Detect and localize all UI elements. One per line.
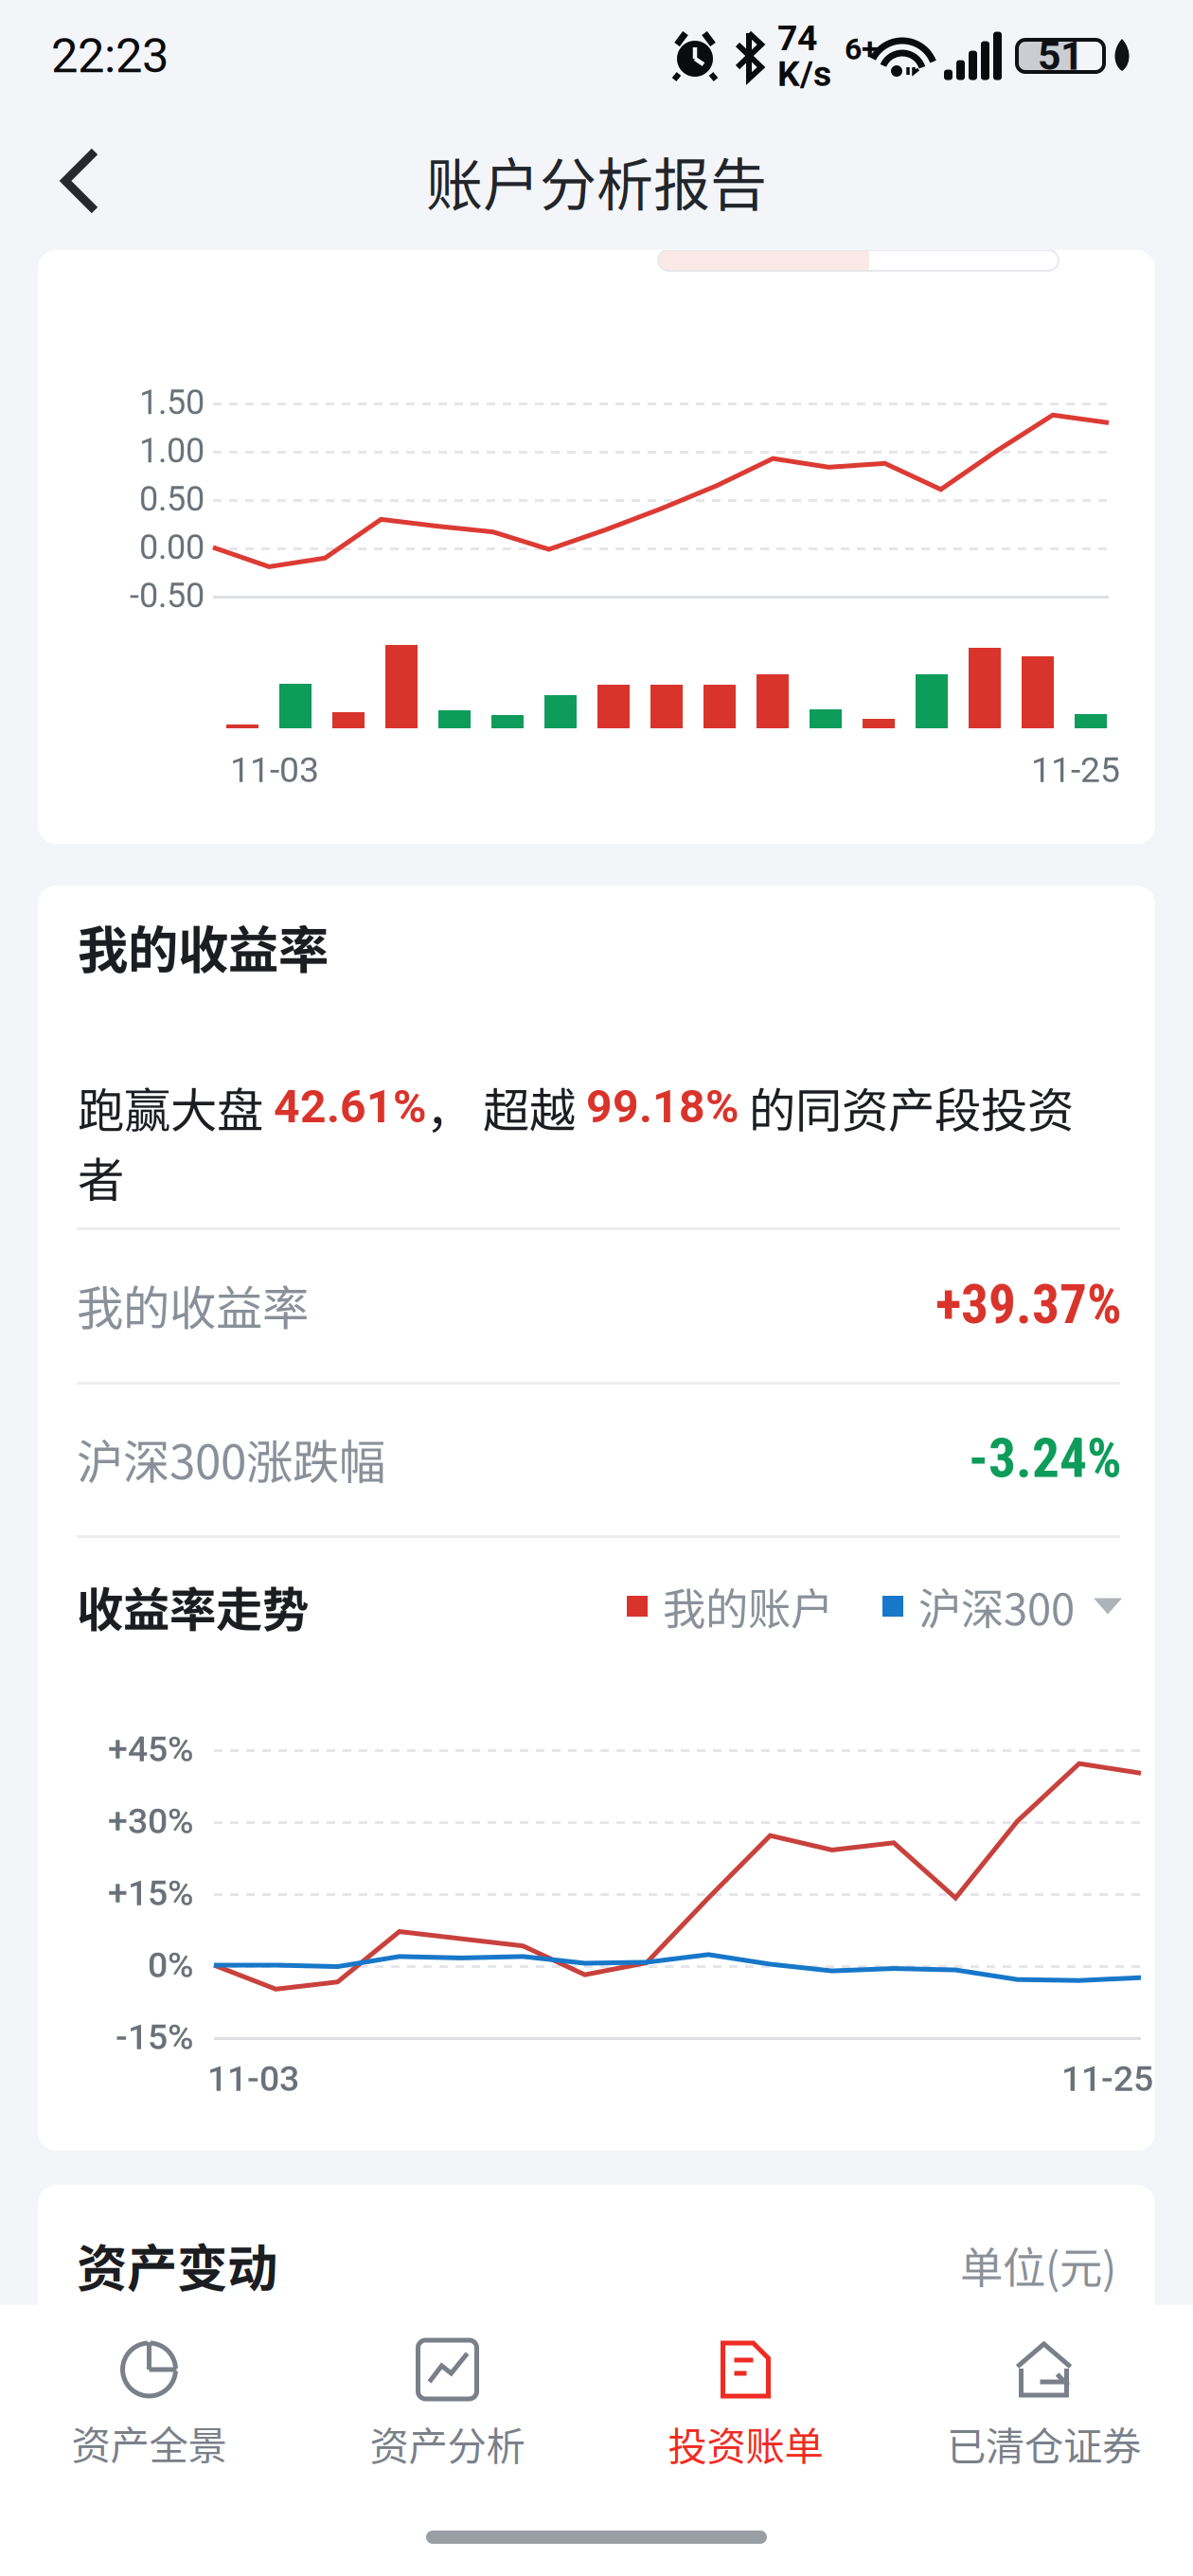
staticText: 沪深300涨跌幅 [77, 1425, 385, 1492]
staticText: ， [426, 1073, 472, 1141]
staticText: -15% [116, 2016, 193, 2058]
staticText: 我的收益率 [78, 910, 329, 983]
staticText: K/s [777, 53, 831, 94]
staticText: 资产分析 [370, 2415, 525, 2472]
button[interactable]: Back [0, 126, 138, 236]
staticText: 账户分析报告 [426, 140, 767, 222]
staticText: 0.50 [139, 479, 205, 519]
staticText: 1.50 [139, 383, 205, 422]
staticText: +45% [108, 1728, 193, 1770]
staticText: 0.00 [139, 527, 205, 567]
button[interactable]: 资产全景 [0, 2331, 298, 2478]
button[interactable]: 已清仓证券 [895, 2330, 1193, 2479]
staticText: 42.61% [274, 1080, 426, 1133]
staticText: 1.00 [139, 431, 205, 471]
button[interactable]: 投资账单 [596, 2330, 895, 2479]
staticText: 单位(元) [960, 2234, 1116, 2296]
staticText: 的同资产段投资 [739, 1073, 1074, 1141]
staticText: -3.24% [969, 1427, 1122, 1490]
staticText: 超越 [472, 1073, 586, 1141]
staticText: 11-03 [207, 2058, 299, 2099]
staticText: +15% [108, 1872, 193, 1914]
staticText: 11-03 [230, 749, 319, 791]
staticText: 收益率走势 [77, 1572, 309, 1640]
staticText: 资产变动 [77, 2228, 277, 2302]
staticText: 我的账户 [663, 1575, 833, 1637]
staticText: 资产全景 [71, 2414, 227, 2471]
staticText: 跑赢大盘 [78, 1073, 274, 1141]
staticText: 11-25 [1031, 749, 1120, 791]
staticText: 51 [1038, 32, 1083, 80]
staticText: 我的收益率 [77, 1271, 309, 1338]
staticText: 99.18% [586, 1080, 739, 1133]
staticText: 6+ [845, 31, 878, 67]
button[interactable]: 资产分析 [298, 2330, 596, 2479]
staticText: 者 [78, 1143, 124, 1210]
staticText: +39.37% [935, 1273, 1122, 1336]
staticText: 已清仓证券 [947, 2415, 1141, 2472]
staticText: 74 [777, 17, 817, 59]
staticText: -0.50 [130, 576, 205, 616]
staticText: +30% [108, 1800, 193, 1842]
staticText: 22:23 [51, 28, 169, 84]
staticText: 投资账单 [668, 2415, 823, 2472]
staticText: 11-25 [1061, 2058, 1153, 2099]
staticText: 沪深300 [918, 1575, 1075, 1637]
staticText: 0% [148, 1944, 193, 1986]
